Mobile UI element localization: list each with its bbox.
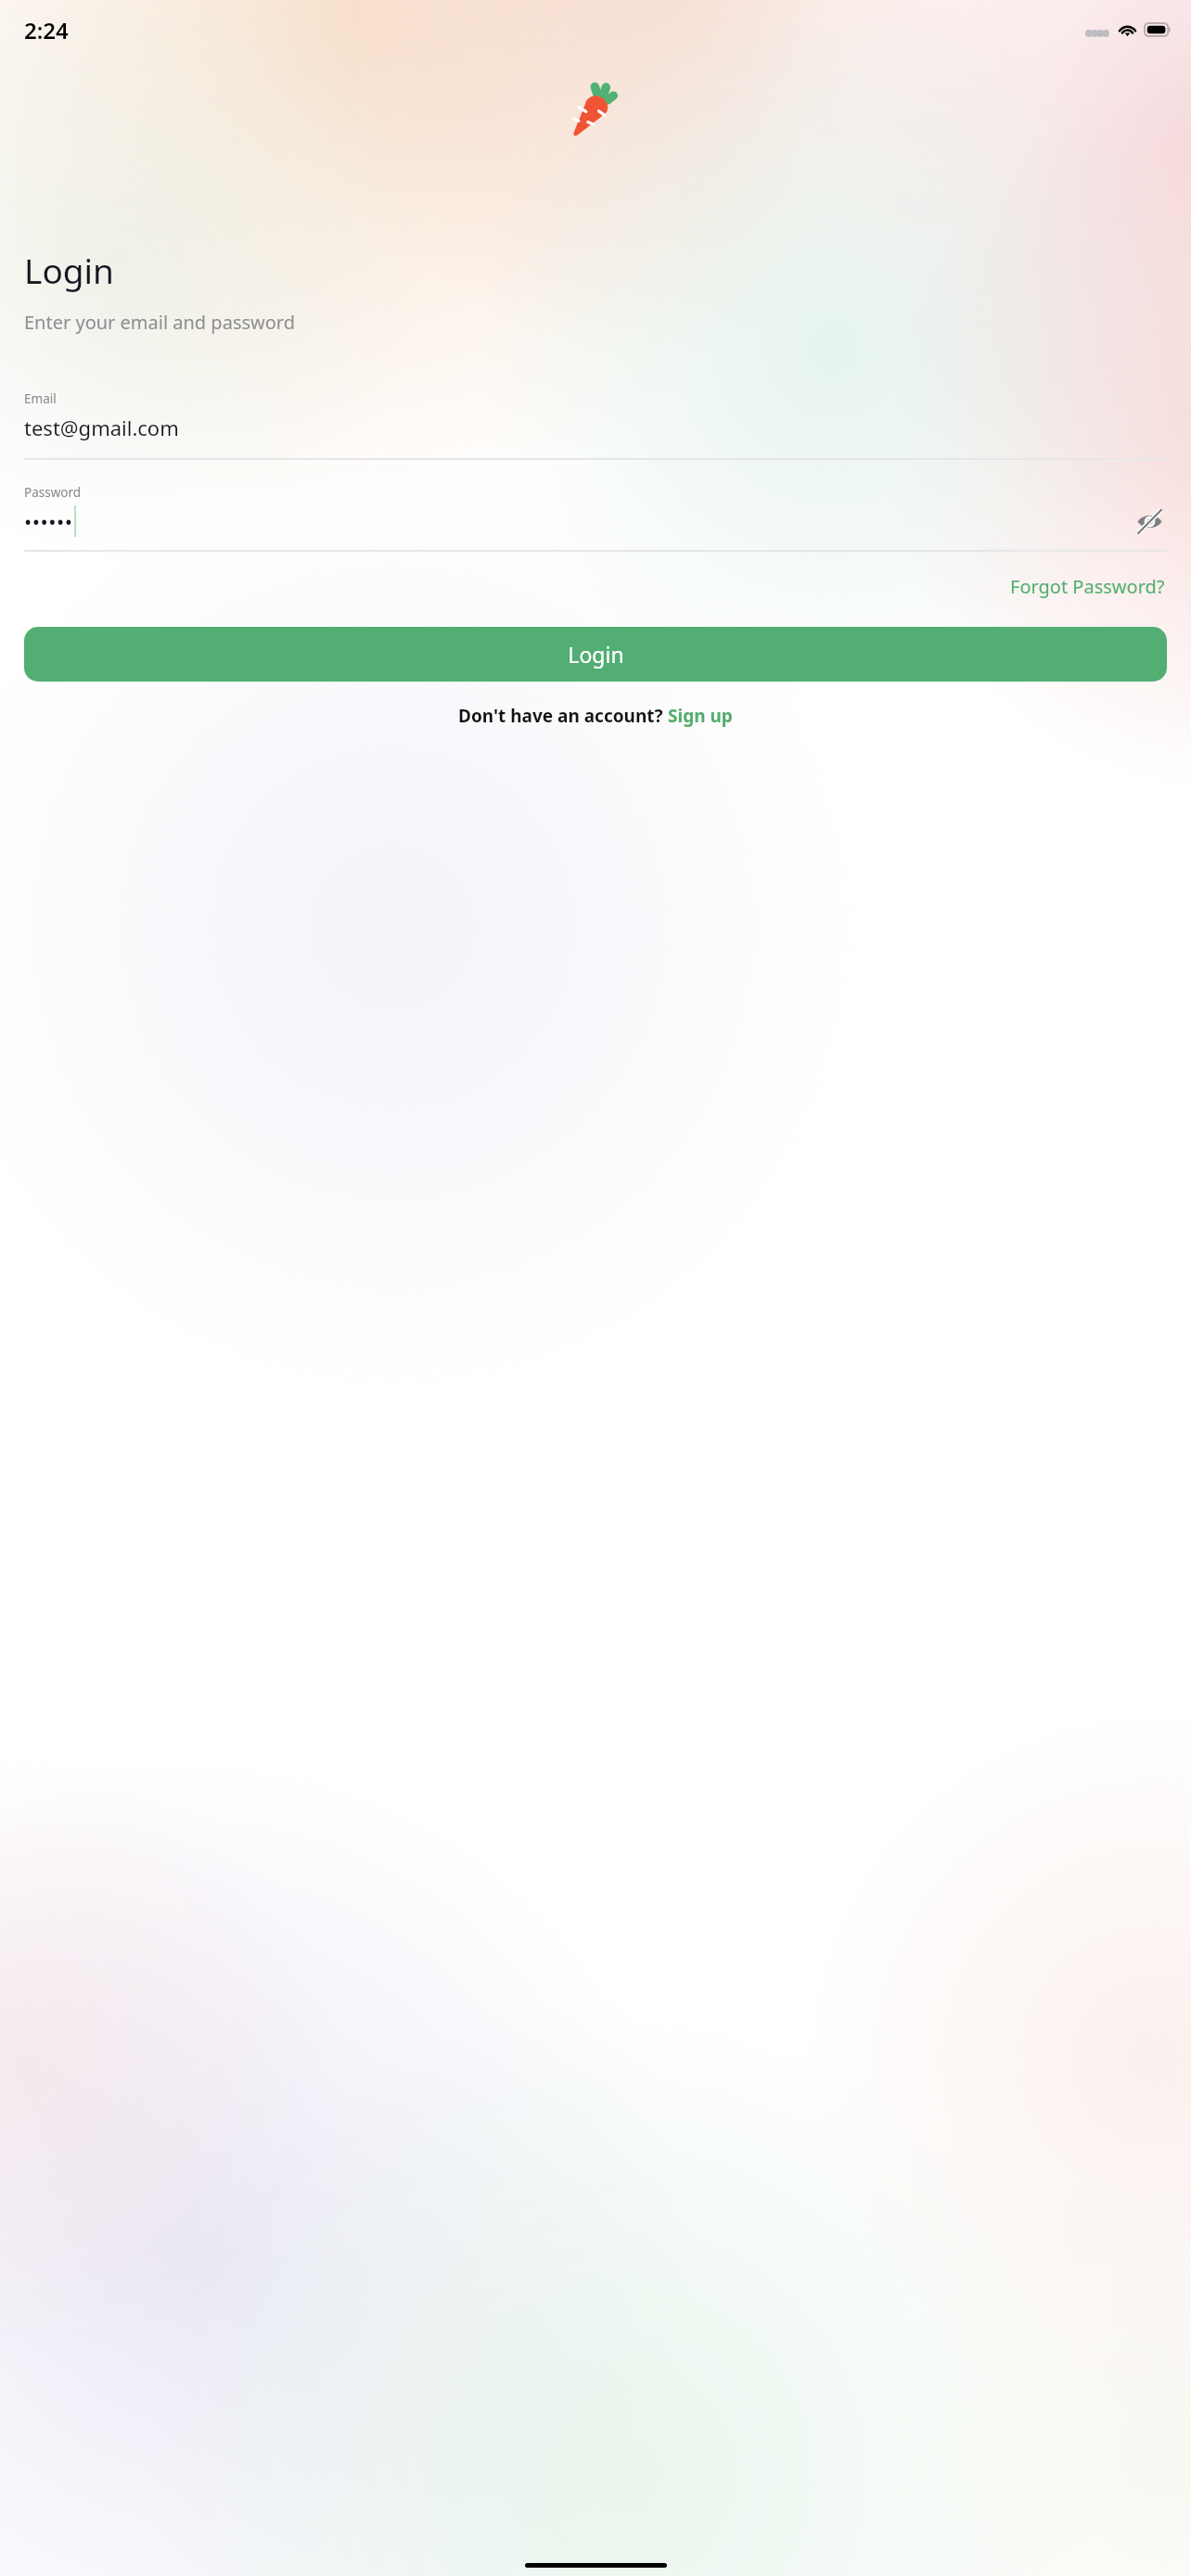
button[interactable]: Login — [24, 627, 1167, 682]
staticText: Email — [24, 390, 57, 407]
staticText: 2:24 — [24, 15, 69, 45]
staticText: Password — [24, 484, 82, 501]
button[interactable]: Show password — [1132, 504, 1167, 539]
staticText: •••••• — [24, 507, 73, 535]
staticText: Enter your email and password — [24, 310, 296, 335]
staticText: Login — [24, 247, 114, 293]
staticText: test@gmail.com — [24, 414, 179, 441]
button[interactable]: Sign up — [668, 704, 733, 728]
staticText: Sign up — [668, 704, 733, 728]
staticText: Don't have an account? — [458, 704, 668, 728]
staticText: Forgot Password? — [1010, 574, 1165, 599]
button[interactable]: Forgot Password? — [1008, 570, 1167, 603]
staticText: Login — [568, 640, 624, 669]
